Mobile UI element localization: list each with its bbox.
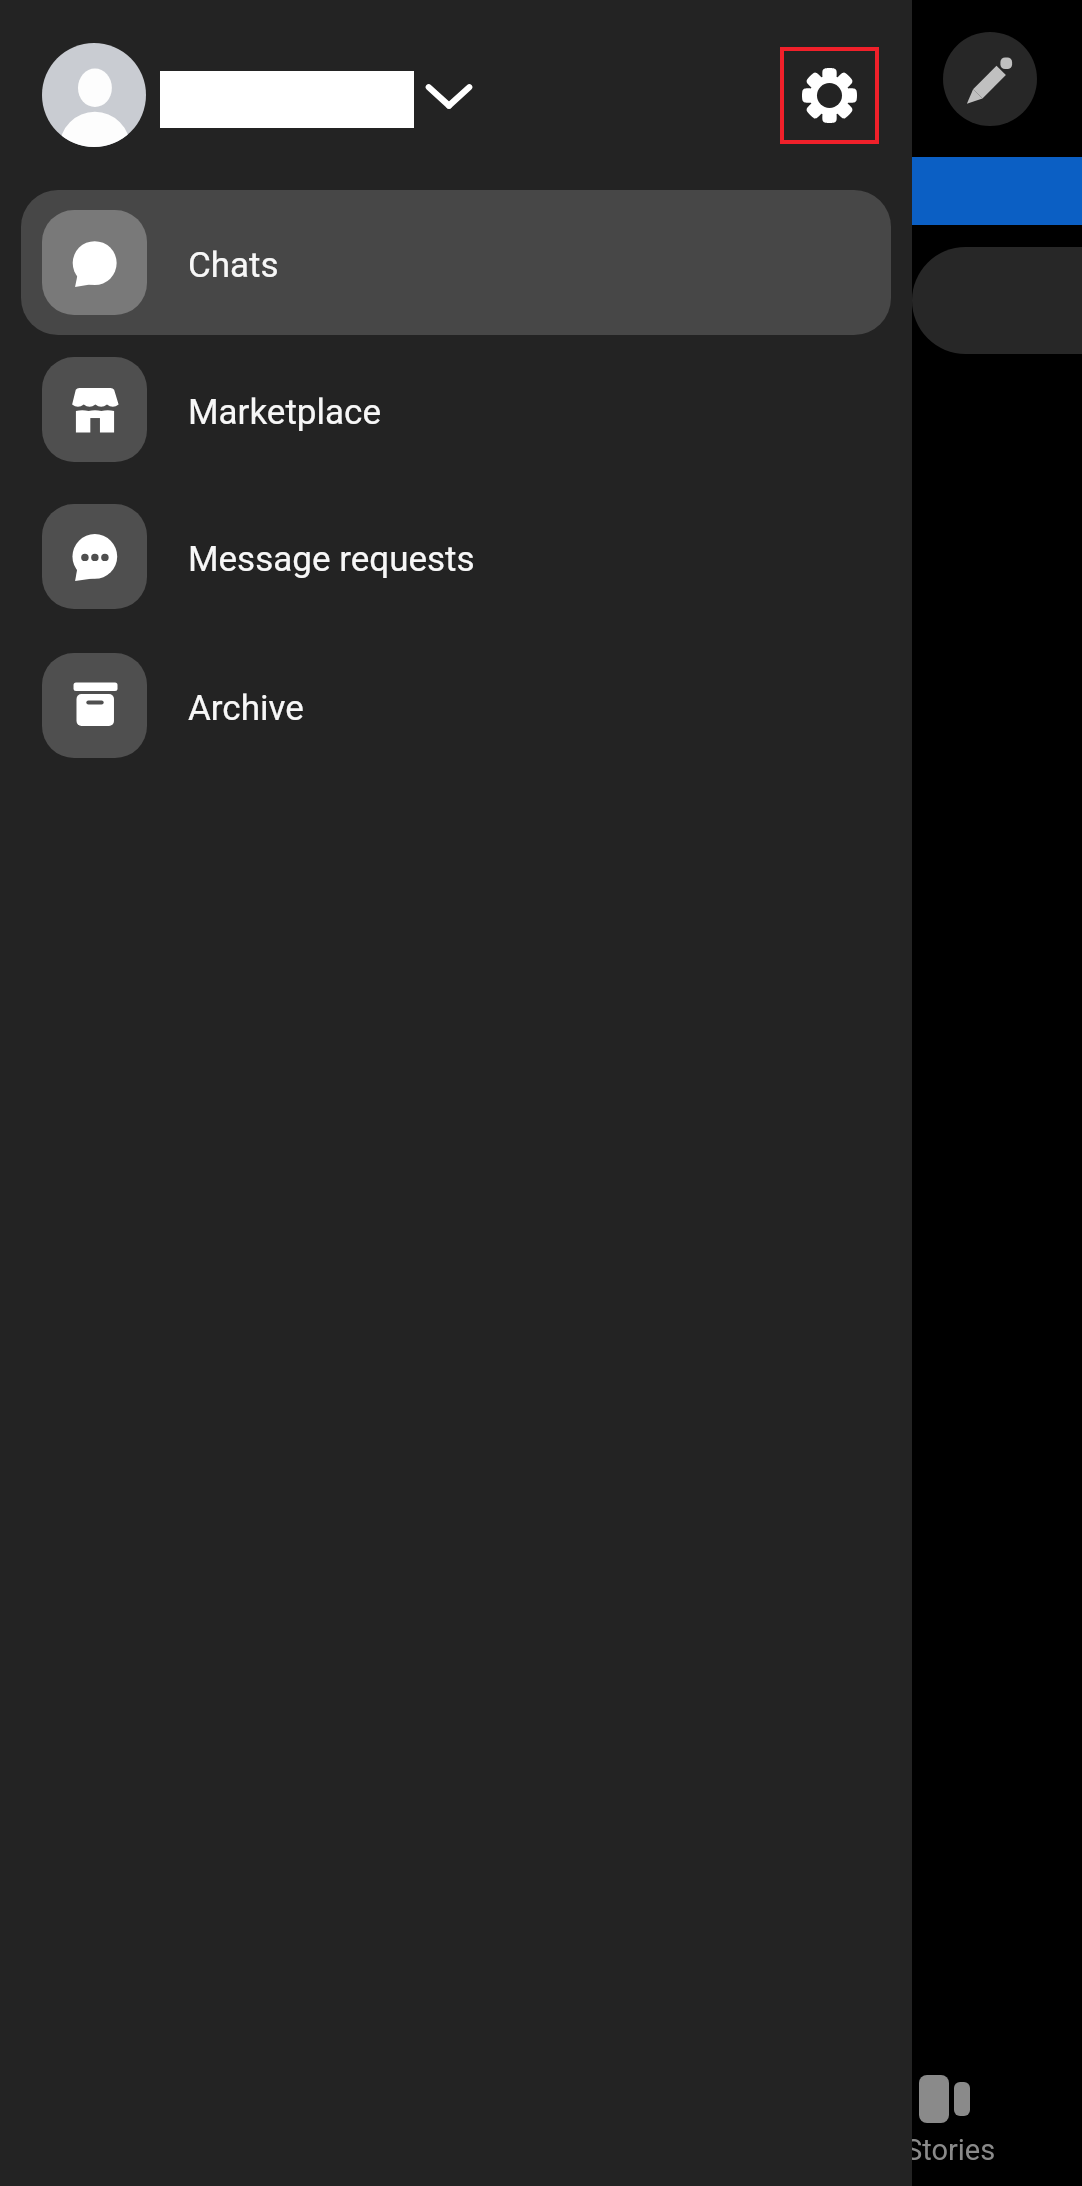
- staticText: Stories: [905, 2133, 996, 2167]
- button[interactable]: New message: [943, 32, 1037, 126]
- button[interactable]: Profile photo: [42, 43, 146, 147]
- staticText: Chats: [188, 245, 279, 286]
- staticText: Message requests: [188, 539, 475, 580]
- button[interactable]: Archive: [21, 633, 891, 778]
- button[interactable]: Stories: [864, 2040, 1046, 2186]
- staticText: Marketplace: [188, 392, 381, 433]
- button[interactable]: Message requests: [21, 484, 891, 629]
- button[interactable]: Chats: [21, 190, 891, 335]
- button[interactable]: Marketplace: [21, 337, 891, 482]
- staticText: Archive: [188, 688, 304, 729]
- button[interactable]: Search: [912, 247, 1082, 354]
- button[interactable]: Switch account: [418, 64, 480, 126]
- button[interactable]: Settings: [780, 47, 879, 144]
